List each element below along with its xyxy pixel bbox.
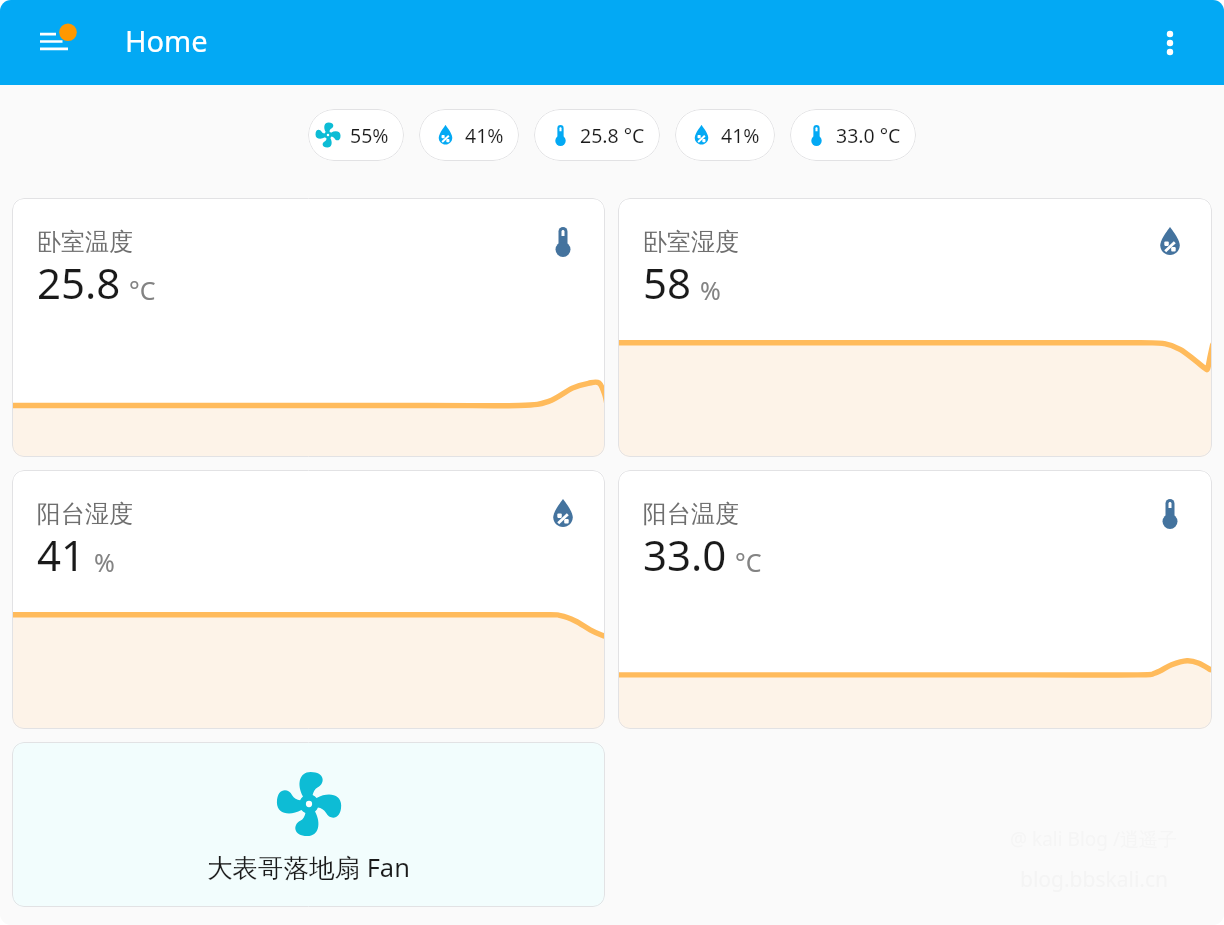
staticText: 卧室湿度	[643, 227, 739, 257]
staticText: °C	[735, 545, 762, 579]
staticText: 41%	[721, 122, 760, 149]
staticText: 33.0	[643, 526, 727, 583]
button[interactable]: 41%	[419, 109, 519, 161]
button[interactable]: 阳台湿度	[12, 470, 605, 729]
staticText: %	[94, 545, 115, 579]
staticText: 41%	[465, 122, 504, 149]
staticText: %	[700, 273, 721, 307]
button[interactable]: More options	[1142, 15, 1198, 71]
staticText: °C	[129, 273, 156, 307]
staticText: 55%	[350, 122, 389, 149]
staticText: 大表哥落地扇 Fan	[207, 850, 410, 885]
staticText: 33.0 °C	[836, 122, 901, 149]
staticText: 阳台湿度	[37, 499, 133, 529]
button[interactable]: 大表哥落地扇 Fan	[12, 742, 605, 907]
staticText: 58	[643, 254, 692, 311]
button[interactable]: 卧室湿度	[618, 198, 1212, 457]
staticText: 25.8 °C	[580, 122, 645, 149]
button[interactable]: 卧室温度	[12, 198, 605, 457]
button[interactable]: 25.8 °C	[534, 109, 660, 161]
staticText: 25.8	[37, 254, 121, 311]
staticText: 卧室温度	[37, 227, 133, 257]
staticText: Home	[125, 21, 208, 60]
button[interactable]: 55%	[308, 109, 404, 161]
staticText: 阳台温度	[643, 499, 739, 529]
staticText: 41	[37, 526, 86, 583]
button[interactable]: Menu	[16, 15, 84, 71]
button[interactable]: 33.0 °C	[790, 109, 916, 161]
button[interactable]: 阳台温度	[618, 470, 1212, 729]
button[interactable]: 41%	[675, 109, 775, 161]
